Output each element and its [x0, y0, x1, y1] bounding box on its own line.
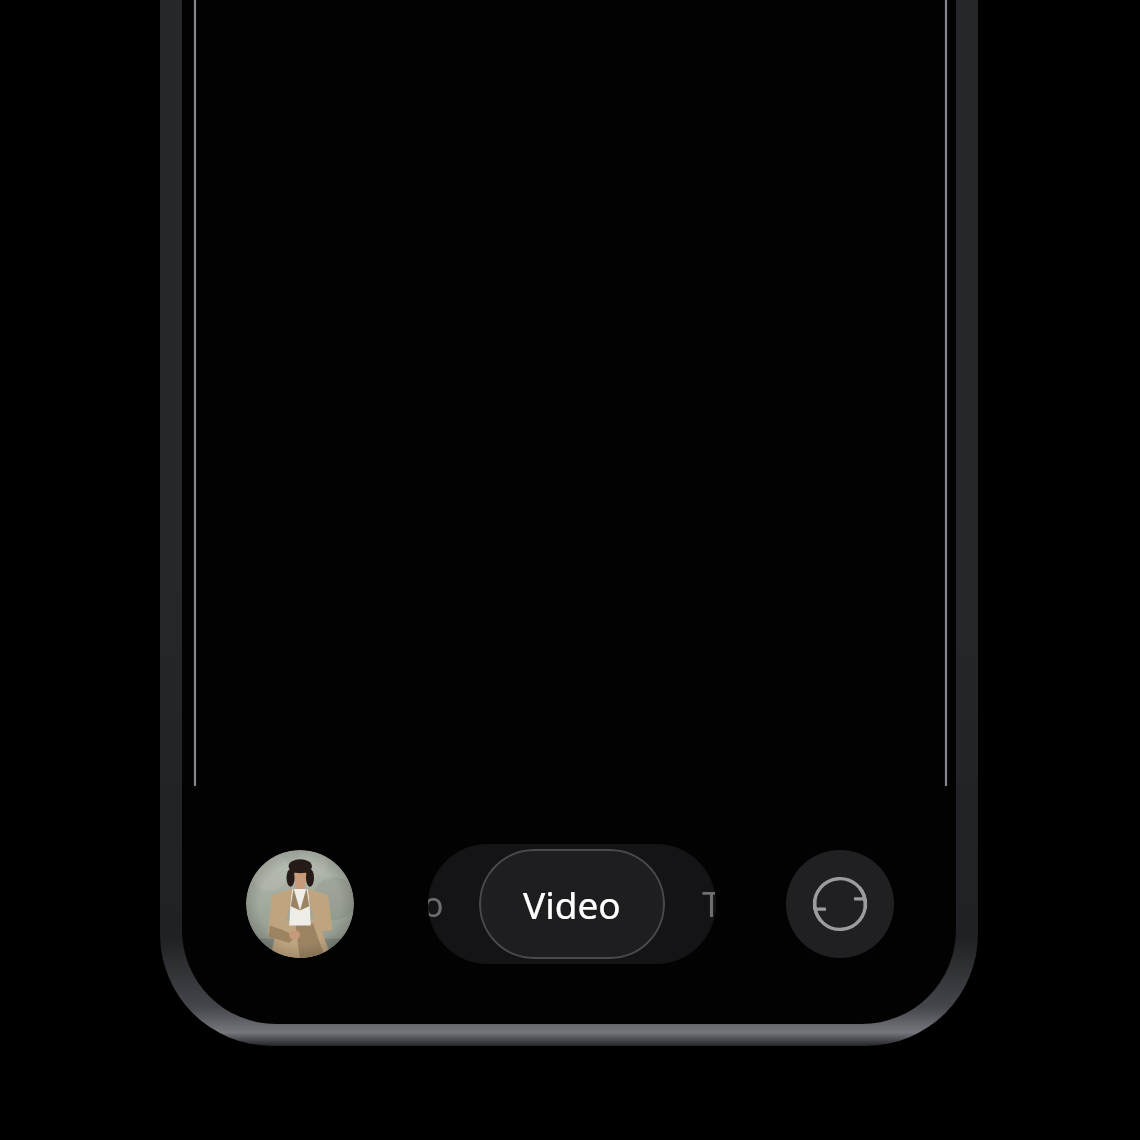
- button[interactable]: T: [702, 881, 716, 927]
- button[interactable]: Last photo, open gallery: [246, 850, 354, 958]
- button[interactable]: Video: [479, 849, 665, 959]
- staticText: Video: [523, 879, 621, 929]
- button[interactable]: o: [428, 881, 444, 927]
- button[interactable]: Switch camera: [786, 850, 894, 958]
